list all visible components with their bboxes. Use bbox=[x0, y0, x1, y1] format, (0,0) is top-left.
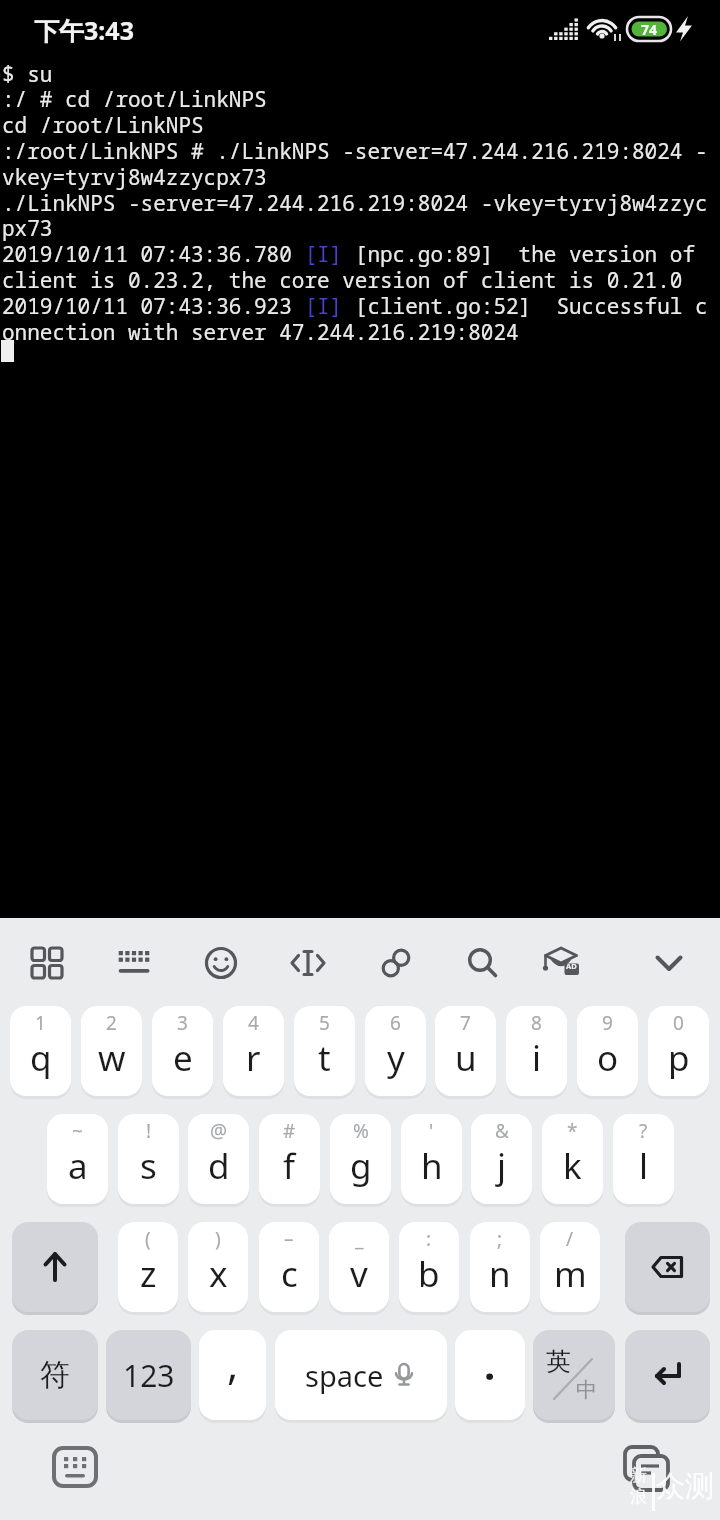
button[interactable] bbox=[459, 939, 507, 987]
button[interactable] bbox=[51, 1443, 99, 1491]
staticText: 4 bbox=[248, 1010, 259, 1036]
button[interactable] bbox=[110, 939, 158, 987]
staticText: z bbox=[140, 1250, 157, 1298]
button[interactable]: 123 bbox=[106, 1330, 191, 1420]
button[interactable]: / bbox=[540, 1222, 600, 1312]
staticText: w bbox=[98, 1034, 126, 1082]
button[interactable]: AD bbox=[537, 939, 585, 987]
button[interactable] bbox=[23, 939, 71, 987]
button[interactable]: 2 bbox=[81, 1006, 142, 1096]
staticText: 英 bbox=[546, 1346, 571, 1377]
button[interactable]: 5 bbox=[294, 1006, 355, 1096]
staticText: n bbox=[489, 1250, 511, 1298]
button[interactable]: ? bbox=[613, 1114, 674, 1204]
staticText: px73 bbox=[2, 214, 53, 243]
button[interactable]: , bbox=[199, 1330, 266, 1420]
staticText: t bbox=[318, 1034, 331, 1082]
staticText: :/root/LinkNPS # ./LinkNPS -server=47.24… bbox=[2, 137, 708, 166]
button[interactable]: 4 bbox=[223, 1006, 284, 1096]
staticText: 3 bbox=[177, 1010, 188, 1036]
button[interactable]: 3 bbox=[152, 1006, 213, 1096]
staticText: b bbox=[418, 1250, 440, 1298]
button[interactable]: ~ bbox=[47, 1114, 108, 1204]
staticText: 符 bbox=[40, 1356, 70, 1394]
staticText: client is 0.23.2, the core version of cl… bbox=[2, 266, 683, 295]
staticText: a bbox=[68, 1142, 88, 1190]
staticText: ' bbox=[429, 1118, 434, 1144]
staticText: g bbox=[350, 1142, 372, 1190]
button[interactable]: 6 bbox=[365, 1006, 426, 1096]
staticText: p bbox=[668, 1034, 690, 1082]
staticText: 中 bbox=[576, 1377, 597, 1403]
staticText: k bbox=[563, 1142, 582, 1190]
button[interactable]: ( bbox=[118, 1222, 178, 1312]
button[interactable]: 英 bbox=[533, 1330, 615, 1420]
button[interactable]: ' bbox=[401, 1114, 462, 1204]
staticText: x bbox=[209, 1250, 228, 1298]
staticText: 6 bbox=[390, 1010, 401, 1036]
staticText: r bbox=[246, 1034, 261, 1082]
staticText: cd /root/LinkNPS bbox=[2, 111, 204, 140]
staticText: – bbox=[284, 1226, 294, 1252]
button[interactable] bbox=[372, 939, 420, 987]
staticText: , bbox=[227, 1335, 239, 1392]
button[interactable]: space bbox=[275, 1330, 447, 1420]
button[interactable]: 8 bbox=[506, 1006, 567, 1096]
staticText: & bbox=[495, 1118, 509, 1144]
staticText: 浪 bbox=[630, 1486, 647, 1507]
button[interactable] bbox=[625, 1222, 710, 1312]
button[interactable]: 0 bbox=[648, 1006, 709, 1096]
button[interactable]: – bbox=[259, 1222, 319, 1312]
staticText: u bbox=[455, 1034, 477, 1082]
button[interactable]: ; bbox=[470, 1222, 530, 1312]
staticText: * bbox=[567, 1118, 578, 1144]
button[interactable]: ! bbox=[118, 1114, 179, 1204]
staticText: onnection with server 47.244.216.219:802… bbox=[2, 318, 519, 347]
staticText: v bbox=[350, 1250, 368, 1298]
staticText: 2019/10/11 07:43:36.780 [I] [npc.go:89] … bbox=[2, 240, 695, 269]
staticText: AD bbox=[566, 961, 577, 971]
button[interactable] bbox=[197, 939, 245, 987]
staticText: 下午3:43 bbox=[34, 13, 134, 47]
button[interactable]: # bbox=[259, 1114, 320, 1204]
button[interactable] bbox=[284, 939, 332, 987]
staticText: 5 bbox=[319, 1010, 330, 1036]
staticText: ) bbox=[215, 1226, 221, 1252]
button[interactable] bbox=[625, 1330, 710, 1420]
button[interactable] bbox=[645, 939, 693, 987]
staticText: o bbox=[597, 1034, 619, 1082]
staticText: _ bbox=[355, 1226, 364, 1252]
staticText: c bbox=[281, 1250, 298, 1298]
staticText: 2 bbox=[106, 1010, 117, 1036]
button[interactable]: : bbox=[399, 1222, 459, 1312]
button[interactable]: & bbox=[471, 1114, 532, 1204]
staticText: l bbox=[639, 1142, 649, 1190]
staticText: ! bbox=[146, 1118, 152, 1144]
button[interactable]: 9 bbox=[577, 1006, 638, 1096]
button[interactable]: % bbox=[330, 1114, 391, 1204]
staticText: j bbox=[497, 1142, 507, 1190]
staticText: s bbox=[140, 1142, 157, 1190]
staticText: space bbox=[305, 1356, 384, 1395]
button[interactable] bbox=[12, 1222, 98, 1312]
button[interactable]: ) bbox=[188, 1222, 248, 1312]
staticText: : bbox=[426, 1226, 432, 1252]
button[interactable]: 符 bbox=[12, 1330, 98, 1420]
button[interactable]: · bbox=[455, 1330, 525, 1420]
staticText: 123 bbox=[123, 1355, 175, 1396]
button[interactable] bbox=[620, 1442, 672, 1494]
staticText: / bbox=[566, 1226, 574, 1252]
button[interactable]: 1 bbox=[10, 1006, 71, 1096]
staticText: e bbox=[173, 1034, 193, 1082]
staticText: q bbox=[30, 1034, 52, 1082]
button[interactable]: 7 bbox=[435, 1006, 496, 1096]
button[interactable]: _ bbox=[329, 1222, 389, 1312]
staticText: 9 bbox=[602, 1010, 613, 1036]
staticText: :/ # cd /root/LinkNPS bbox=[2, 85, 267, 114]
staticText: ; bbox=[497, 1226, 503, 1252]
staticText: ./LinkNPS -server=47.244.216.219:8024 -v… bbox=[2, 189, 708, 218]
staticText: $ su bbox=[2, 60, 53, 89]
staticText: ~ bbox=[72, 1118, 83, 1144]
button[interactable]: @ bbox=[188, 1114, 249, 1204]
button[interactable]: * bbox=[542, 1114, 603, 1204]
